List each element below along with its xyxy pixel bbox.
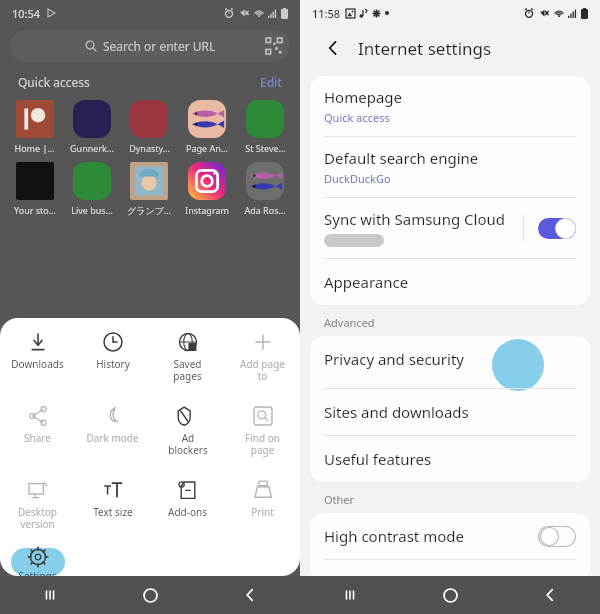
staticText: Search or enter URL bbox=[103, 38, 216, 54]
staticText: Sites and downloads bbox=[324, 402, 469, 422]
staticText: Add-ons bbox=[168, 505, 207, 519]
staticText: 11:58 bbox=[312, 6, 341, 21]
button[interactable]: Home bbox=[400, 576, 500, 614]
button[interactable]: Share bbox=[0, 406, 75, 474]
button[interactable]: Appearance bbox=[310, 259, 590, 305]
button[interactable]: Default search engine bbox=[310, 137, 590, 197]
button[interactable]: Print bbox=[225, 480, 300, 548]
staticText: Dark mode bbox=[86, 431, 139, 445]
staticText: 10:54 bbox=[12, 6, 41, 21]
staticText: Print bbox=[251, 505, 274, 519]
button[interactable]: Add page to bbox=[225, 332, 300, 400]
staticText: Edit bbox=[260, 74, 282, 90]
staticText: Share bbox=[24, 431, 51, 445]
button[interactable]: Dynasty… bbox=[120, 100, 178, 154]
button[interactable]: Your sto… bbox=[6, 162, 63, 216]
staticText: Gunnerk… bbox=[70, 142, 114, 154]
button[interactable]: St Steve… bbox=[236, 100, 294, 154]
button[interactable]: Ada Ros… bbox=[236, 162, 294, 216]
button[interactable]: Add-ons bbox=[150, 480, 225, 548]
button[interactable]: Sites and downloads bbox=[310, 389, 590, 435]
button[interactable]: Dark mode bbox=[75, 406, 150, 474]
staticText: High contrast mode bbox=[324, 526, 464, 546]
staticText: Add page to bbox=[240, 357, 285, 383]
staticText: Sync with Samsung Cloud bbox=[324, 209, 505, 229]
staticText: Text size bbox=[93, 505, 133, 519]
staticText: Ad blockers bbox=[168, 431, 208, 457]
button[interactable]: Edit bbox=[260, 74, 282, 90]
staticText: Privacy and security bbox=[324, 349, 464, 369]
button[interactable]: Back bbox=[200, 576, 300, 614]
button[interactable]: Homepage bbox=[310, 76, 590, 136]
button[interactable]: Toggle bbox=[538, 218, 576, 239]
button[interactable]: Find on page bbox=[225, 406, 300, 474]
button[interactable]: Privacy and security bbox=[310, 336, 590, 382]
button[interactable]: Text size bbox=[75, 480, 150, 548]
button[interactable]: Desktop version bbox=[0, 480, 75, 548]
button[interactable]: Page An… bbox=[178, 100, 236, 154]
button[interactable]: Search or enter URL bbox=[10, 30, 290, 62]
staticText: Your sto… bbox=[14, 204, 56, 216]
staticText: Page An… bbox=[186, 142, 228, 154]
button[interactable]: History bbox=[75, 332, 150, 400]
staticText: Downloads bbox=[11, 357, 64, 371]
staticText: Useful features bbox=[324, 449, 432, 469]
button[interactable]: Ad blockers bbox=[150, 406, 225, 474]
staticText: Find on page bbox=[245, 431, 280, 457]
staticText: Other bbox=[324, 492, 355, 507]
staticText: Live bus… bbox=[71, 204, 113, 216]
staticText: Advanced bbox=[324, 315, 375, 330]
staticText: Quick access bbox=[18, 74, 90, 90]
button[interactable]: Recents bbox=[0, 576, 100, 614]
staticText: Homepage bbox=[324, 87, 403, 107]
button[interactable]: Toggle bbox=[538, 526, 576, 547]
button[interactable]: Recents bbox=[300, 576, 400, 614]
button[interactable]: Back bbox=[320, 35, 346, 61]
button[interactable]: グランプ… bbox=[120, 162, 178, 216]
staticText: Home |… bbox=[14, 142, 55, 154]
staticText: DuckDuckGo bbox=[324, 171, 391, 186]
button[interactable]: Back bbox=[500, 576, 600, 614]
button[interactable]: Sync with Samsung Cloud bbox=[310, 198, 590, 258]
staticText: グランプ… bbox=[127, 204, 171, 216]
button[interactable]: Instagram bbox=[178, 162, 236, 216]
staticText: Quick access bbox=[324, 110, 390, 125]
button[interactable]: Downloads bbox=[0, 332, 75, 400]
staticText: St Steve… bbox=[245, 142, 286, 154]
staticText: Settings bbox=[18, 569, 57, 576]
staticText: Desktop version bbox=[18, 505, 57, 531]
button[interactable]: High contrast mode bbox=[310, 513, 590, 559]
button[interactable]: Live bus… bbox=[63, 162, 120, 216]
staticText: Dynasty… bbox=[129, 142, 170, 154]
staticText: Default search engine bbox=[324, 148, 479, 168]
button[interactable]: Home bbox=[100, 576, 200, 614]
button[interactable]: Useful features bbox=[310, 436, 590, 482]
button[interactable]: Home |… bbox=[6, 100, 63, 154]
staticText: History bbox=[96, 357, 130, 371]
staticText: Internet settings bbox=[358, 37, 492, 60]
button[interactable]: Gunnerk… bbox=[63, 100, 120, 154]
button[interactable]: Saved pages bbox=[150, 332, 225, 400]
button[interactable]: Settings bbox=[0, 548, 75, 576]
button[interactable]: Scan QR code bbox=[266, 38, 282, 54]
staticText: Instagram bbox=[185, 204, 229, 216]
staticText: Saved pages bbox=[173, 357, 202, 383]
staticText: Ada Ros… bbox=[244, 204, 286, 216]
staticText: Appearance bbox=[324, 272, 409, 292]
